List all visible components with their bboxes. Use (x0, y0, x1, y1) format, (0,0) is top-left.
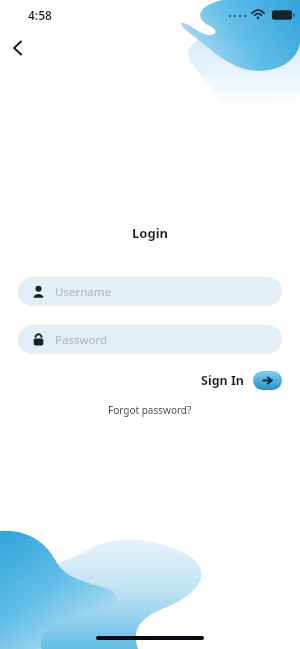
button[interactable]: Password (18, 325, 282, 354)
staticText: Forgot password? (108, 403, 192, 417)
button[interactable]: Back (4, 34, 32, 62)
other: Sign In (253, 371, 282, 390)
button[interactable]: Forgot password? (18, 403, 282, 417)
staticText: Username (55, 284, 111, 300)
staticText: Password (55, 332, 108, 348)
staticText: Login (18, 224, 282, 242)
button[interactable]: Username (18, 277, 282, 306)
staticText: 4:58 (28, 7, 52, 23)
button[interactable]: Sign In (18, 371, 282, 390)
staticText: Sign In (201, 372, 244, 389)
